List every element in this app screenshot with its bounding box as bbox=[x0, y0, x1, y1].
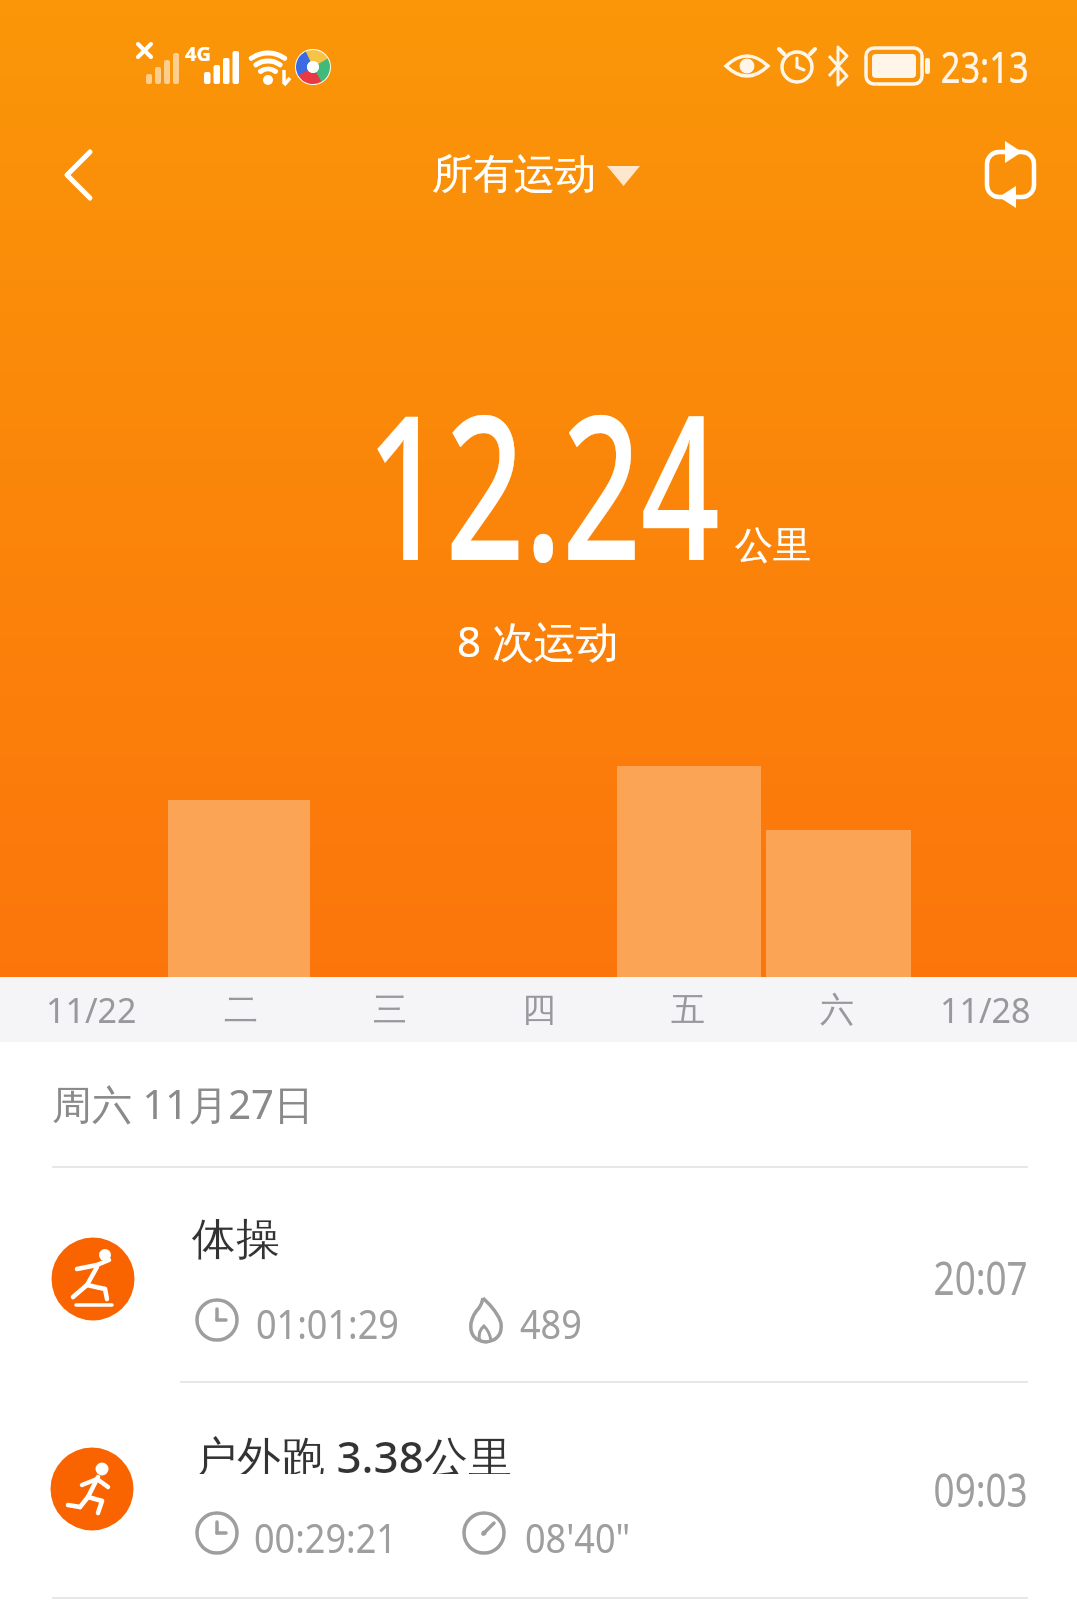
staticText: 20:07 bbox=[934, 1246, 1028, 1309]
staticText: 11/28 bbox=[940, 987, 1031, 1033]
button[interactable]: 二 bbox=[166, 977, 315, 1042]
staticText: 8 次运动 bbox=[457, 612, 618, 668]
button[interactable]: 11/22 bbox=[17, 977, 166, 1042]
button[interactable] bbox=[40, 135, 120, 215]
staticText: 08'40" bbox=[525, 1510, 630, 1558]
staticText: 五 bbox=[671, 988, 705, 1031]
staticText: 01:01:29 bbox=[256, 1296, 399, 1344]
staticText: 4G bbox=[185, 40, 211, 67]
button[interactable]: 户外跑 3.38公里 bbox=[0, 1383, 1077, 1598]
button[interactable]: 五 bbox=[613, 977, 762, 1042]
staticText: 00:29:21 bbox=[254, 1510, 397, 1558]
staticText: 周六 11月27日 bbox=[52, 1076, 314, 1130]
staticText: 六 bbox=[820, 988, 854, 1031]
button[interactable]: 三 bbox=[315, 977, 464, 1042]
staticText: 所有运动 bbox=[432, 149, 596, 201]
button[interactable]: 四 bbox=[464, 977, 613, 1042]
staticText: 三 bbox=[373, 988, 407, 1031]
button[interactable]: 11/28 bbox=[911, 977, 1060, 1042]
button[interactable]: 体操 bbox=[0, 1168, 1077, 1381]
button[interactable]: 六 bbox=[762, 977, 911, 1042]
staticText: 09:03 bbox=[934, 1458, 1028, 1521]
staticText: 体操 bbox=[192, 1212, 280, 1260]
staticText: 公里 bbox=[735, 521, 811, 569]
staticText: 489 bbox=[520, 1296, 582, 1344]
staticText: 二 bbox=[224, 988, 258, 1031]
staticText: 户外跑 3.38公里 bbox=[193, 1426, 512, 1474]
button[interactable] bbox=[967, 135, 1057, 215]
staticText: 23:13 bbox=[941, 36, 1029, 96]
button[interactable]: 所有运动 bbox=[402, 145, 652, 205]
staticText: 12.24 bbox=[366, 346, 720, 596]
staticText: 四 bbox=[522, 988, 556, 1031]
staticText: 11/22 bbox=[46, 987, 137, 1033]
